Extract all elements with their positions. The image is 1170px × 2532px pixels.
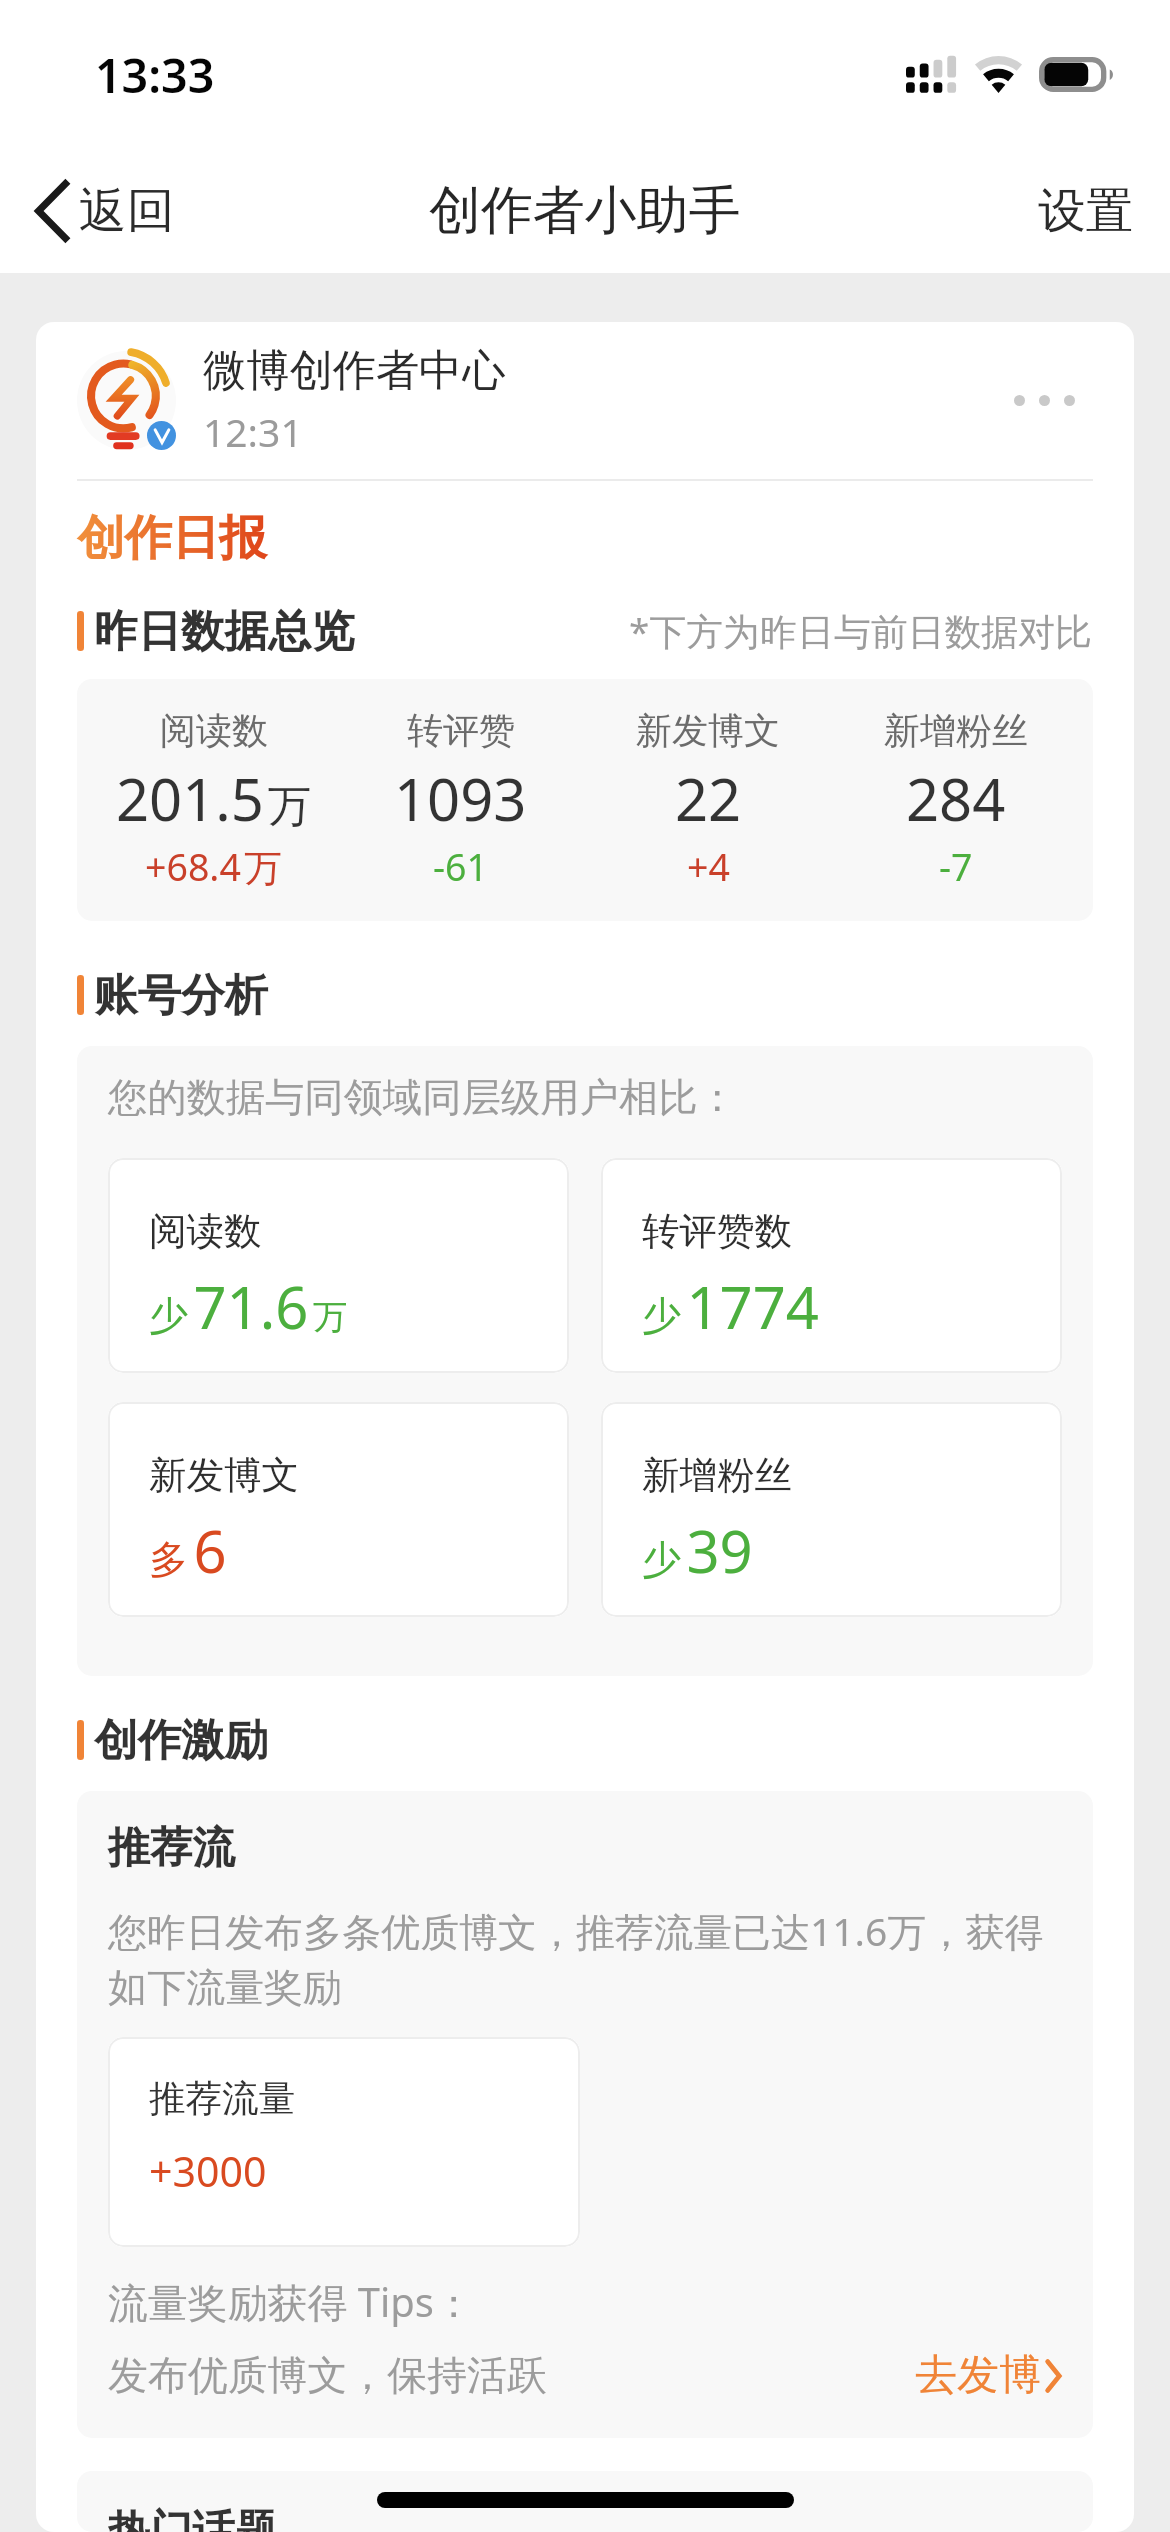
button[interactable]: 去发博 (915, 2343, 1062, 2408)
staticText: 账号分析 (94, 968, 268, 1023)
button[interactable]: 转评赞数 (601, 1158, 1062, 1373)
staticText: 201.5 万 (116, 759, 312, 838)
button[interactable]: 阅读数 (108, 1158, 569, 1373)
staticText: 阅读数 (149, 1208, 262, 1255)
staticText: 新增粉丝 (884, 708, 1028, 753)
staticText: 多 6 (149, 1511, 227, 1590)
staticText: 12:31 (203, 405, 303, 458)
staticText: 创作者小助手 (429, 178, 741, 243)
staticText: 少 71.6 万 (149, 1267, 348, 1346)
staticText: 微博创作者中心 (203, 343, 506, 397)
staticText: +68.4 万 (145, 841, 282, 892)
staticText: +4 (687, 841, 730, 892)
button[interactable]: 设置 (1008, 157, 1164, 265)
staticText: 昨日数据总览 (94, 604, 355, 659)
staticText: 少 39 (642, 1511, 753, 1590)
staticText: 阅读数 (160, 708, 268, 753)
staticText: 推荐流 (108, 1821, 235, 1874)
staticText: 创作日报 (77, 508, 267, 568)
button[interactable]: 返回 (9, 160, 202, 262)
staticText: 转评赞 (407, 708, 515, 753)
staticText: *下方为昨日与前日数据对比 (629, 606, 1093, 656)
button[interactable]: 推荐流量 (108, 2037, 580, 2247)
staticText: 13:33 (95, 43, 215, 106)
staticText: 热门话题 (108, 2504, 278, 2532)
button[interactable]: 新增粉丝 (601, 1402, 1062, 1617)
staticText: 1093 (394, 759, 527, 838)
staticText: 返回 (79, 181, 175, 241)
button[interactable]: 新发博文 (108, 1402, 569, 1617)
staticText: 创作激励 (94, 1713, 268, 1768)
staticText: 转评赞数 (642, 1208, 792, 1255)
staticText: 您昨日发布多条优质博文，推荐流量已达11.6万，获得 如下流量奖励 (108, 1904, 1044, 2013)
staticText: 设置 (1038, 181, 1134, 241)
staticText: -7 (939, 841, 973, 892)
staticText: +3000 (149, 2143, 267, 2199)
staticText: 去发博 (915, 2349, 1041, 2402)
staticText: 少 1774 (642, 1267, 819, 1346)
staticText: 您的数据与同领域同层级用户相比： (108, 1073, 737, 1123)
staticText: 发布优质博文，保持活跃 (108, 2351, 547, 2401)
staticText: 流量奖励获得 Tips： (108, 2274, 474, 2328)
staticText: 新发博文 (636, 708, 780, 753)
button[interactable]: More options (996, 377, 1093, 424)
staticText: 284 (906, 759, 1006, 838)
staticText: 新增粉丝 (642, 1452, 792, 1499)
staticText: -61 (433, 841, 488, 892)
staticText: 推荐流量 (149, 2076, 296, 2122)
staticText: 22 (675, 759, 742, 838)
staticText: 新发博文 (149, 1452, 299, 1499)
